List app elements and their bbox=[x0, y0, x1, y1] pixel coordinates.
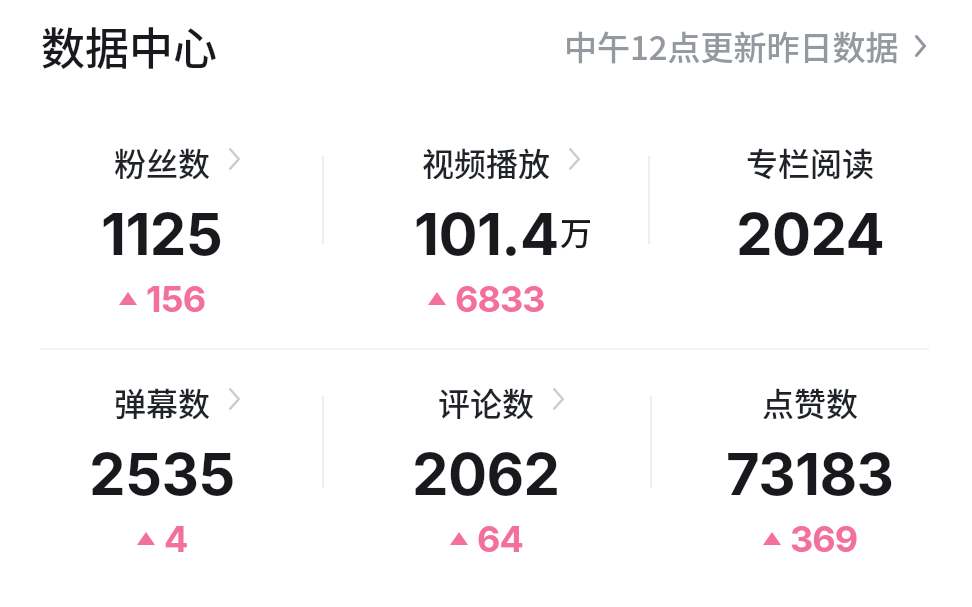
staticText: 2024 bbox=[736, 199, 885, 269]
staticText: 数据中心 bbox=[41, 14, 217, 78]
staticText: 73183 bbox=[726, 439, 894, 509]
button[interactable]: 粉丝数 bbox=[0, 139, 324, 317]
button[interactable]: 弹幕数 bbox=[0, 379, 324, 557]
staticText: 156 bbox=[146, 277, 206, 317]
staticText: 369 bbox=[790, 517, 858, 557]
staticText: 6833 bbox=[455, 277, 545, 317]
staticText: 2062 bbox=[412, 439, 560, 509]
button[interactable]: 专栏阅读 bbox=[648, 139, 972, 317]
button[interactable]: 评论数 bbox=[324, 379, 648, 557]
staticText: 64 bbox=[477, 517, 523, 557]
staticText: 万 bbox=[560, 208, 593, 254]
staticText: 4 bbox=[164, 517, 188, 557]
staticText: 中午12点更新昨日数据 bbox=[564, 22, 899, 70]
staticText: 专栏阅读 bbox=[746, 139, 875, 179]
button[interactable]: 视频播放 bbox=[324, 139, 648, 317]
staticText: 评论数 bbox=[438, 379, 535, 419]
staticText: 2535 bbox=[89, 439, 235, 509]
staticText: 点赞数 bbox=[762, 379, 859, 419]
button[interactable]: 点赞数 bbox=[648, 379, 972, 557]
staticText: 101.4 bbox=[414, 199, 559, 269]
staticText: 粉丝数 bbox=[114, 139, 211, 179]
staticText: 1125 bbox=[101, 199, 223, 269]
staticText: 弹幕数 bbox=[114, 379, 211, 419]
button[interactable]: 中午12点更新昨日数据 bbox=[564, 22, 926, 70]
staticText: 视频播放 bbox=[422, 139, 551, 179]
